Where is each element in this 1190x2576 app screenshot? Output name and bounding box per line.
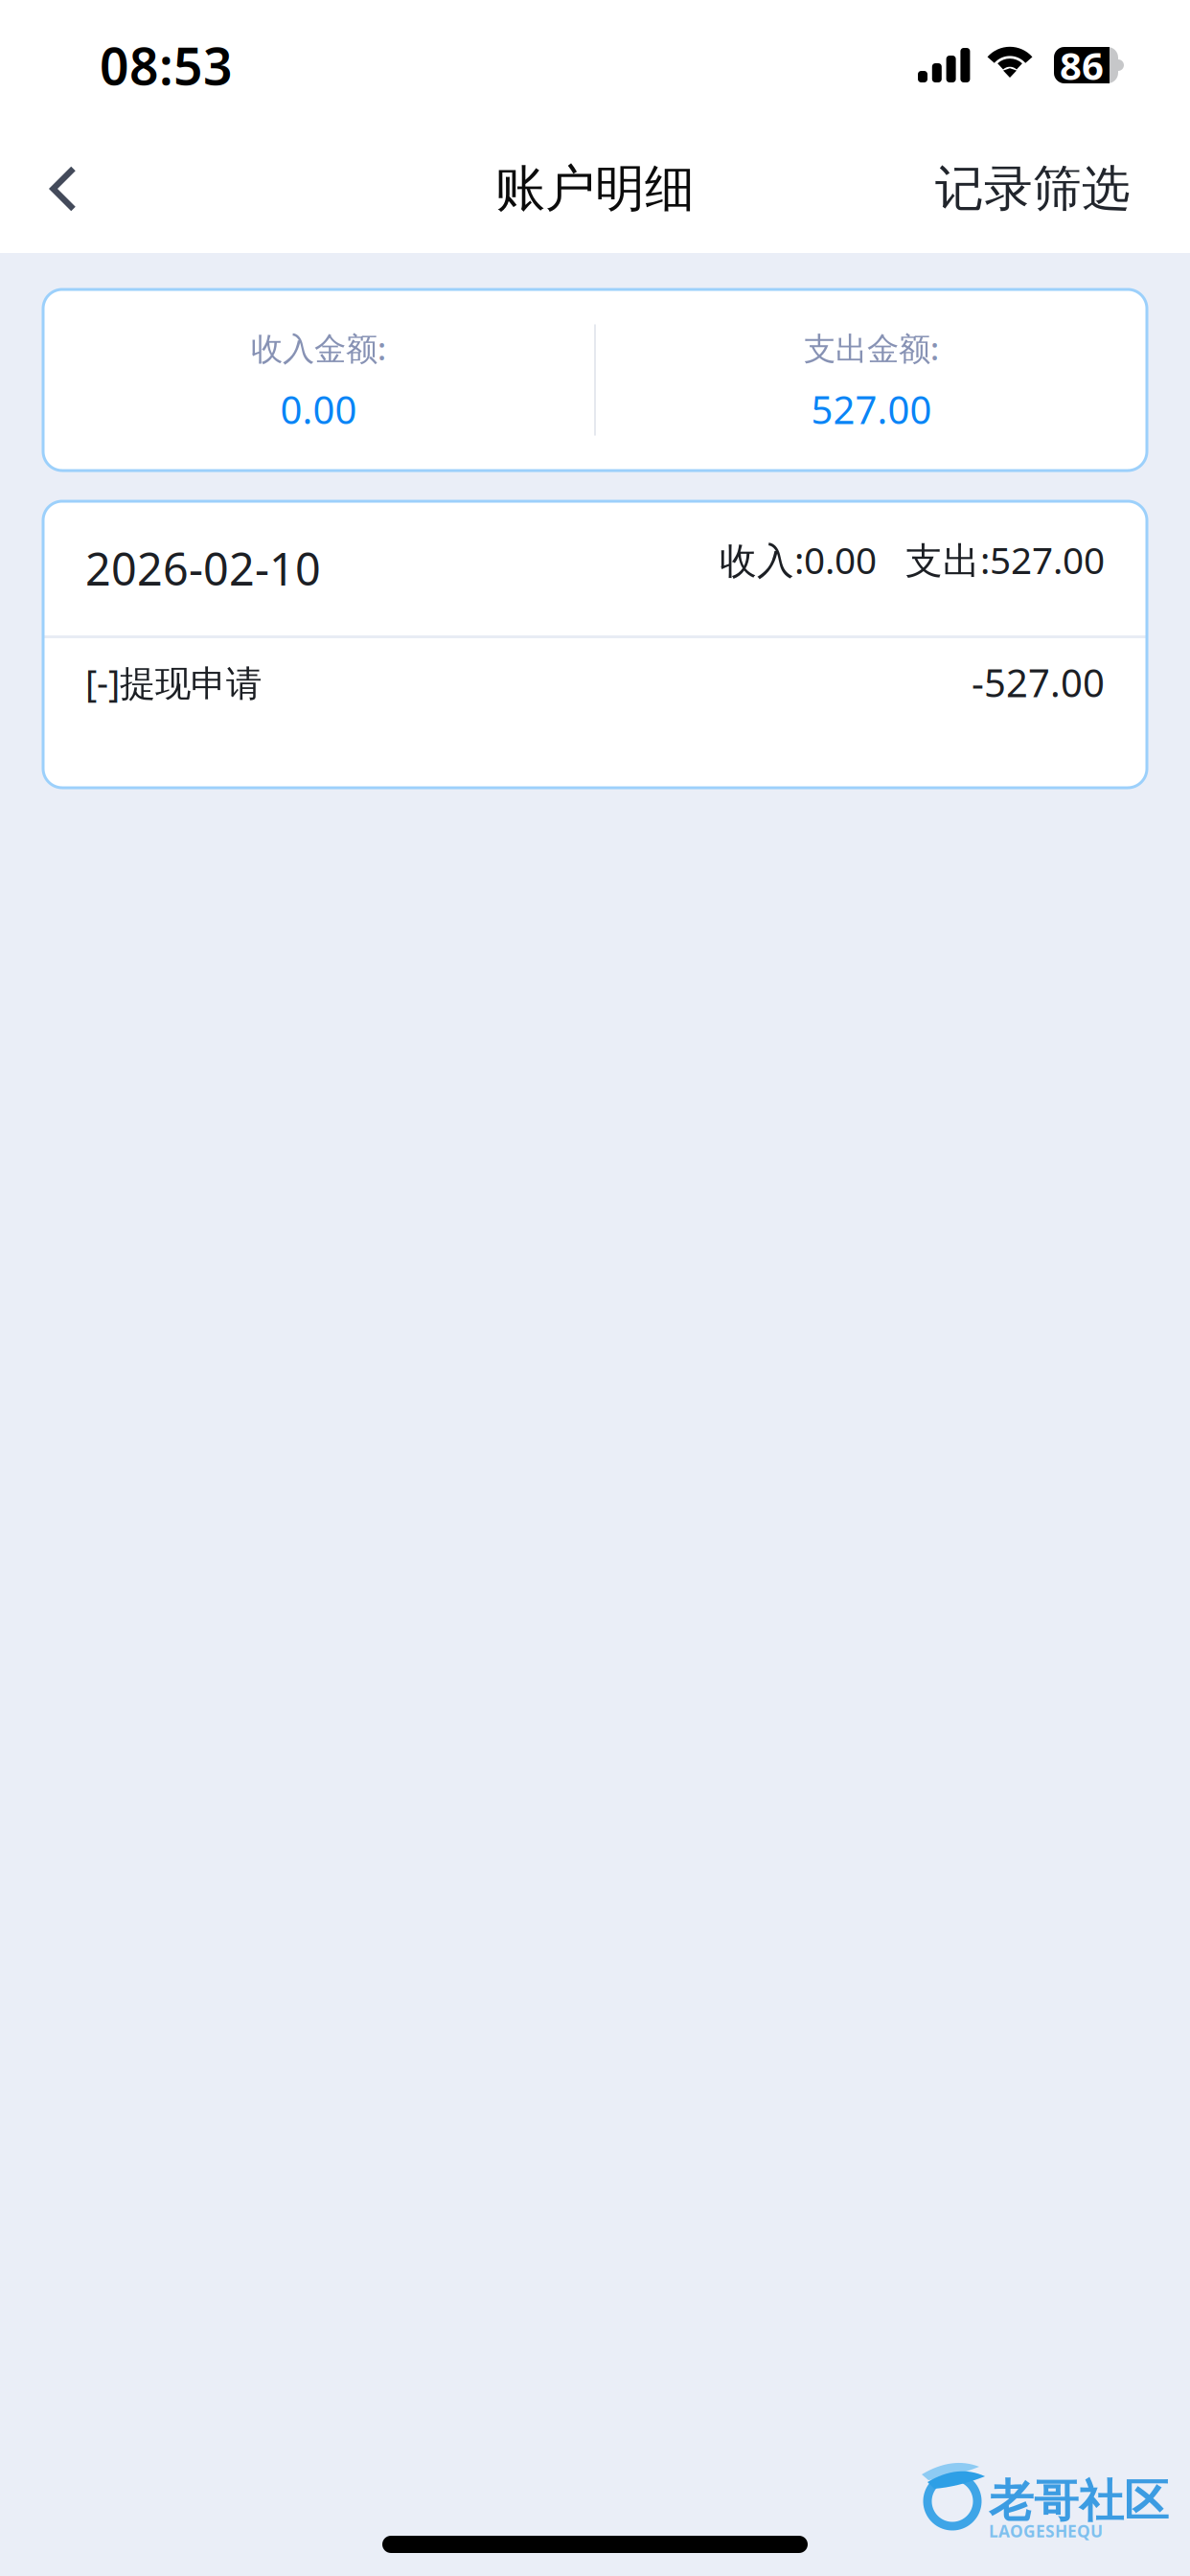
staticText: 收入:0.00 支出:527.00 bbox=[720, 535, 1105, 584]
button[interactable]: 返回 bbox=[17, 136, 109, 241]
button[interactable]: 记录筛选 bbox=[924, 136, 1142, 241]
staticText: [-]提现申请 bbox=[85, 659, 262, 706]
staticText: -527.00 bbox=[972, 657, 1105, 708]
staticText: 支出金额: bbox=[804, 327, 939, 369]
staticText: 收入金额: bbox=[251, 327, 386, 369]
staticText: 记录筛选 bbox=[935, 159, 1131, 219]
button[interactable]: [-]提现申请 bbox=[43, 638, 1147, 726]
staticText: 2026-02-10 bbox=[85, 539, 321, 598]
staticText: 0.00 bbox=[280, 384, 357, 435]
staticText: 老哥社区 bbox=[989, 2474, 1169, 2529]
staticText: 86 bbox=[1060, 40, 1104, 91]
staticText: 账户明细 bbox=[495, 158, 695, 219]
staticText: 08:53 bbox=[100, 31, 233, 99]
staticText: LAOGESHEQU bbox=[989, 2520, 1103, 2542]
staticText: 527.00 bbox=[811, 384, 932, 435]
